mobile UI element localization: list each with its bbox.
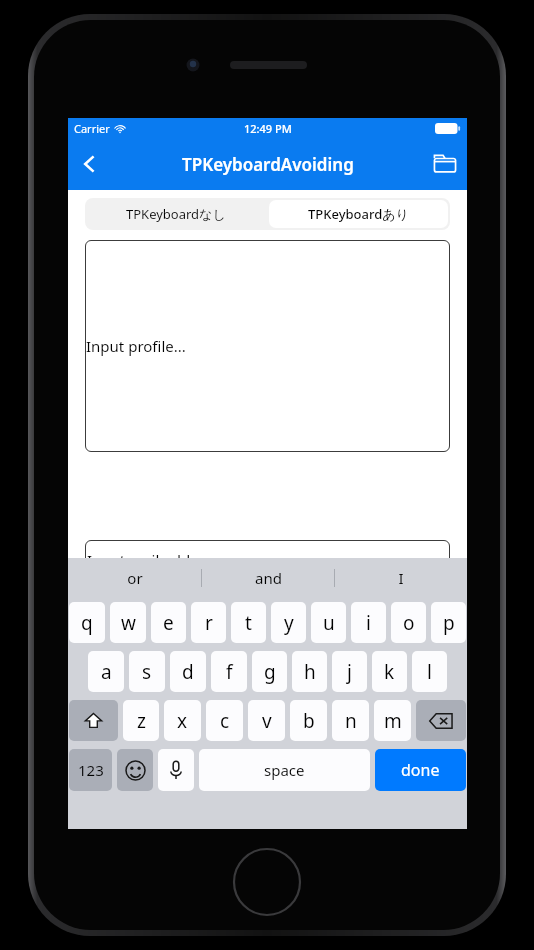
staticText: TPKeyboardAvoiding xyxy=(182,153,354,176)
button[interactable]: done xyxy=(375,749,466,791)
button[interactable]: a xyxy=(88,651,124,692)
staticText: s xyxy=(142,659,152,685)
staticText: h xyxy=(304,659,316,685)
staticText: g xyxy=(264,659,276,685)
staticText: Carrier xyxy=(74,121,110,136)
staticText: and xyxy=(255,568,282,588)
button[interactable]: t xyxy=(231,602,266,643)
button[interactable]: 123 xyxy=(69,749,112,791)
button[interactable]: Input mail address xyxy=(85,540,450,580)
button[interactable]: Input profile... xyxy=(85,240,450,452)
staticText: d xyxy=(182,659,194,685)
staticText: Input mail address xyxy=(87,550,219,570)
button[interactable]: TPKeyboardなし xyxy=(85,198,267,230)
button[interactable]: x xyxy=(164,700,201,741)
staticText: e xyxy=(163,610,174,636)
staticText: b xyxy=(303,708,315,734)
staticText: v xyxy=(262,708,272,734)
button[interactable]: c xyxy=(206,700,243,741)
button[interactable]: e xyxy=(151,602,186,643)
button[interactable]: z xyxy=(123,700,159,741)
staticText: u xyxy=(323,610,335,636)
staticText: z xyxy=(137,708,146,734)
staticText: I xyxy=(398,568,404,588)
staticText: or xyxy=(127,568,143,588)
button[interactable]: Backspace xyxy=(416,700,466,741)
button[interactable]: Dictation xyxy=(158,749,194,791)
button[interactable]: l xyxy=(412,651,447,692)
button[interactable]: Shift xyxy=(69,700,118,741)
staticText: Input profile... xyxy=(86,336,186,356)
button[interactable]: o xyxy=(391,602,426,643)
staticText: m xyxy=(384,708,402,734)
staticText: y xyxy=(284,610,294,636)
button[interactable]: I xyxy=(335,558,467,598)
staticText: 123 xyxy=(78,760,104,780)
button[interactable]: space xyxy=(199,749,370,791)
button[interactable]: s xyxy=(129,651,165,692)
staticText: w xyxy=(121,610,136,636)
staticText: space xyxy=(264,760,305,780)
button[interactable]: or xyxy=(68,558,201,598)
button[interactable]: g xyxy=(252,651,287,692)
staticText: TPKeyboardあり xyxy=(308,205,409,223)
button[interactable]: r xyxy=(191,602,226,643)
staticText: c xyxy=(220,708,230,734)
staticText: l xyxy=(427,659,432,685)
staticText: q xyxy=(81,610,93,636)
button[interactable]: i xyxy=(351,602,386,643)
staticText: TPKeyboardなし xyxy=(126,205,226,223)
button[interactable]: Back xyxy=(68,142,112,186)
button[interactable]: y xyxy=(271,602,306,643)
staticText: t xyxy=(245,610,252,636)
button[interactable]: h xyxy=(292,651,327,692)
staticText: n xyxy=(345,708,357,734)
button[interactable]: v xyxy=(248,700,285,741)
staticText: k xyxy=(384,659,395,685)
button[interactable]: u xyxy=(311,602,346,643)
button[interactable]: p xyxy=(431,602,466,643)
button[interactable]: j xyxy=(332,651,367,692)
staticText: i xyxy=(366,610,371,636)
staticText: a xyxy=(101,659,112,685)
button[interactable]: Folder xyxy=(423,142,467,186)
staticText: j xyxy=(347,659,352,685)
staticText: r xyxy=(205,610,213,636)
button[interactable]: b xyxy=(290,700,327,741)
staticText: done xyxy=(401,759,440,781)
button[interactable]: n xyxy=(332,700,369,741)
staticText: p xyxy=(443,610,455,636)
button[interactable]: m xyxy=(374,700,411,741)
staticText: 12:49 PM xyxy=(244,121,292,136)
button[interactable]: TPKeyboardあり xyxy=(269,200,448,228)
staticText: f xyxy=(226,659,233,685)
button[interactable]: w xyxy=(110,602,146,643)
button[interactable]: d xyxy=(170,651,206,692)
button[interactable]: q xyxy=(69,602,105,643)
button[interactable]: Emoji xyxy=(117,749,153,791)
button[interactable]: k xyxy=(372,651,407,692)
staticText: o xyxy=(403,610,415,636)
staticText: x xyxy=(177,708,188,734)
button[interactable]: and xyxy=(202,558,334,598)
button[interactable]: f xyxy=(211,651,247,692)
